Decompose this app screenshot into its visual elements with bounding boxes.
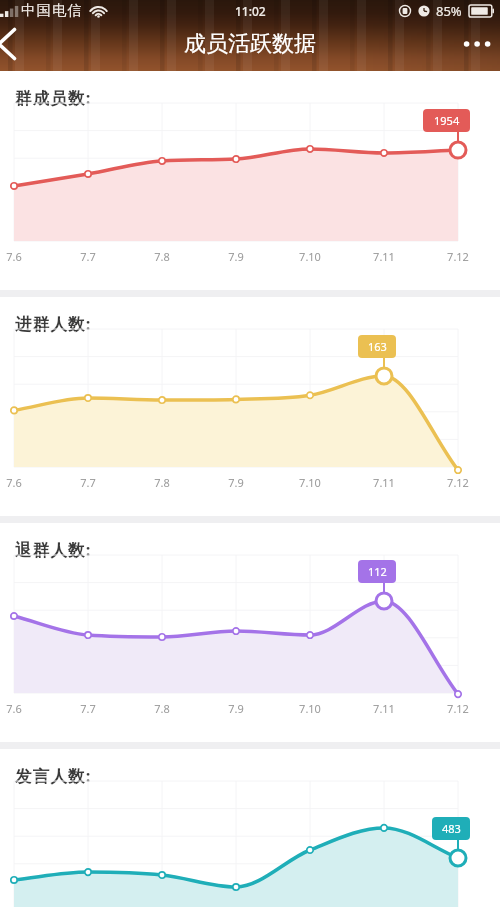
button[interactable]: 112	[358, 560, 396, 583]
staticText: 7.6	[0, 475, 28, 490]
staticText: 483	[442, 821, 461, 836]
staticText: 退群人数:	[15, 538, 92, 561]
button[interactable]: 483	[432, 817, 470, 840]
staticText: 7.11	[370, 475, 398, 490]
button[interactable]: More options	[456, 24, 500, 64]
staticText: 7.6	[0, 249, 28, 264]
staticText: 中国电信	[21, 2, 84, 20]
staticText: 11:02	[235, 3, 266, 19]
staticText: 发言人数:	[15, 764, 92, 787]
staticText: 7.8	[148, 701, 176, 716]
staticText: 7.9	[222, 701, 250, 716]
staticText: 7.12	[444, 701, 472, 716]
staticText: 成员活跃数据	[184, 30, 316, 58]
staticText: 7.7	[74, 249, 102, 264]
staticText: 7.11	[370, 249, 398, 264]
button[interactable]: 1954	[423, 109, 470, 132]
staticText: 7.12	[444, 475, 472, 490]
staticText: 7.6	[0, 701, 28, 716]
staticText: 7.10	[296, 249, 324, 264]
staticText: 7.9	[222, 475, 250, 490]
staticText: 7.10	[296, 475, 324, 490]
staticText: 112	[368, 564, 387, 579]
button[interactable]: 163	[358, 335, 396, 358]
staticText: 7.7	[74, 475, 102, 490]
staticText: 85%	[436, 2, 462, 20]
staticText: 7.12	[444, 249, 472, 264]
button[interactable]: Back	[0, 24, 36, 64]
staticText: 7.10	[296, 701, 324, 716]
staticText: 163	[368, 339, 387, 354]
staticText: 群成员数:	[15, 86, 92, 109]
staticText: 7.8	[148, 249, 176, 264]
staticText: 7.7	[74, 701, 102, 716]
staticText: 1954	[434, 113, 460, 128]
staticText: 进群人数:	[15, 312, 92, 335]
staticText: 7.8	[148, 475, 176, 490]
staticText: 7.11	[370, 701, 398, 716]
staticText: 7.9	[222, 249, 250, 264]
